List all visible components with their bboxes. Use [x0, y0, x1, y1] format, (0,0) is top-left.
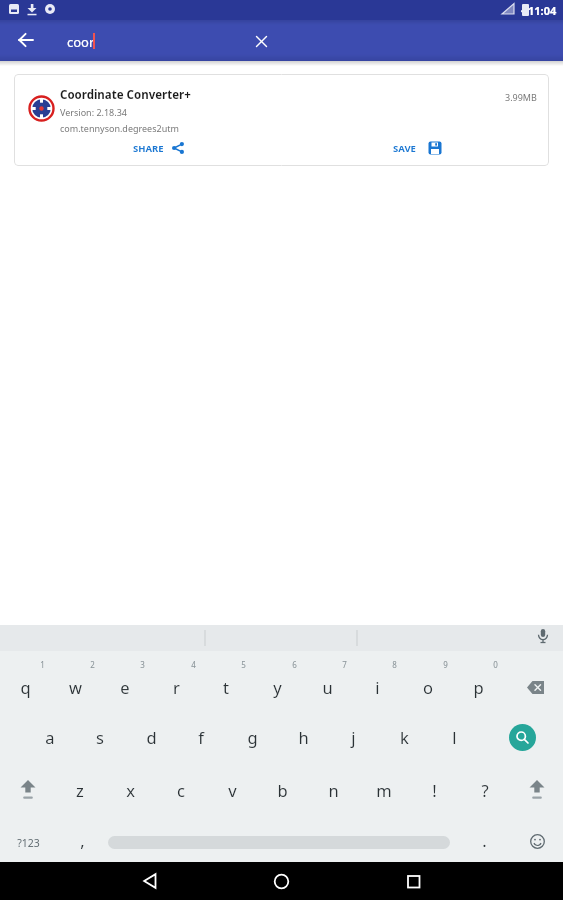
staticText: y	[273, 676, 282, 698]
button[interactable]: r	[154, 667, 198, 707]
staticText: 9	[443, 659, 448, 670]
button[interactable]: o	[406, 667, 450, 707]
button[interactable]: k	[382, 717, 426, 757]
staticText: 2	[90, 659, 95, 670]
button[interactable]	[515, 819, 559, 863]
staticText: q	[20, 676, 31, 698]
staticText: a	[45, 726, 55, 748]
staticText: i	[375, 676, 380, 698]
staticText: ,	[80, 829, 85, 851]
button[interactable]: z	[58, 770, 102, 810]
button[interactable]	[391, 862, 435, 900]
button[interactable]: j	[331, 717, 375, 757]
staticText: n	[328, 779, 339, 801]
button[interactable]	[8, 22, 44, 58]
staticText: g	[247, 726, 258, 748]
button[interactable]: w	[53, 667, 97, 707]
button[interactable]: s	[78, 717, 122, 757]
staticText: o	[423, 676, 433, 698]
staticText: ?123	[17, 836, 40, 850]
staticText: 1	[40, 659, 45, 670]
staticText: l	[452, 726, 457, 748]
button[interactable]: l	[432, 717, 476, 757]
staticText: e	[120, 676, 130, 698]
button[interactable]: x	[108, 770, 152, 810]
button[interactable]: g	[230, 717, 274, 757]
button[interactable]	[515, 766, 559, 814]
button[interactable]: SHARE	[125, 134, 192, 162]
button[interactable]: p	[456, 667, 500, 707]
staticText: t	[223, 676, 229, 698]
button[interactable]: m	[362, 770, 406, 810]
staticText: ?	[481, 779, 489, 801]
button[interactable]: a	[28, 717, 72, 757]
button[interactable]: .	[469, 820, 499, 860]
button[interactable]: i	[355, 667, 399, 707]
staticText: s	[96, 726, 104, 748]
staticText: r	[173, 676, 180, 698]
button[interactable]: q	[3, 667, 47, 707]
staticText: 0	[493, 659, 498, 670]
staticText: c	[177, 779, 185, 801]
button[interactable]: n	[311, 770, 355, 810]
button[interactable]: d	[129, 717, 173, 757]
button[interactable]: v	[210, 770, 254, 810]
staticText: j	[351, 726, 356, 748]
staticText: d	[146, 726, 157, 748]
staticText: 5	[241, 659, 246, 670]
button[interactable]: ,	[67, 820, 97, 860]
staticText: SHARE	[133, 142, 164, 155]
staticText: 11:04	[528, 3, 557, 18]
staticText: com.tennyson.degrees2utm	[60, 122, 179, 134]
staticText: SAVE	[393, 142, 416, 155]
button[interactable]: ?	[463, 770, 507, 810]
staticText: b	[277, 779, 288, 801]
button[interactable]	[6, 766, 50, 814]
staticText: coor	[67, 33, 95, 51]
staticText: 7	[342, 659, 347, 670]
button[interactable]: h	[281, 717, 325, 757]
button[interactable]: f	[179, 717, 223, 757]
staticText: m	[376, 779, 392, 801]
button[interactable]: SAVE	[385, 134, 450, 162]
staticText: h	[298, 726, 309, 748]
button[interactable]	[496, 711, 548, 763]
staticText: 3	[140, 659, 145, 670]
button[interactable]: c	[159, 770, 203, 810]
button[interactable]: t	[204, 667, 248, 707]
button[interactable]: ?123	[3, 823, 53, 863]
staticText: f	[198, 726, 204, 748]
staticText: .	[482, 829, 487, 851]
staticText: x	[126, 779, 135, 801]
staticText: w	[69, 676, 82, 698]
staticText: k	[400, 726, 409, 748]
button[interactable]: u	[305, 667, 349, 707]
staticText: z	[76, 779, 84, 801]
staticText: 4	[191, 659, 196, 670]
staticText: 3.99MB	[505, 91, 537, 103]
staticText: v	[228, 779, 237, 801]
staticText: !	[432, 779, 437, 801]
button[interactable]: e	[103, 667, 147, 707]
button[interactable]: y	[255, 667, 299, 707]
button[interactable]	[128, 862, 172, 900]
button[interactable]: Coordinate Converter+	[14, 74, 549, 166]
staticText: Version: 2.18.34	[60, 106, 127, 118]
button[interactable]	[245, 25, 277, 57]
button[interactable]	[259, 862, 303, 900]
button[interactable]: !	[412, 770, 456, 810]
button[interactable]	[512, 663, 560, 711]
staticText: u	[322, 676, 333, 698]
button[interactable]: b	[260, 770, 304, 810]
staticText: 8	[392, 659, 397, 670]
staticText: p	[473, 676, 484, 698]
staticText: Coordinate Converter+	[60, 87, 191, 103]
staticText: 6	[292, 659, 297, 670]
